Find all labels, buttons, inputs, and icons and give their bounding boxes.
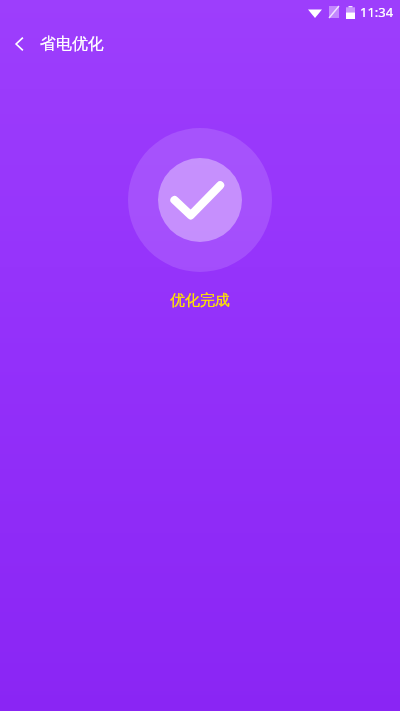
button[interactable]: 返回 (0, 24, 40, 64)
staticText: 省电优化 (40, 34, 104, 54)
staticText: 11:34 (360, 3, 394, 21)
staticText: 优化完成 (170, 291, 230, 310)
